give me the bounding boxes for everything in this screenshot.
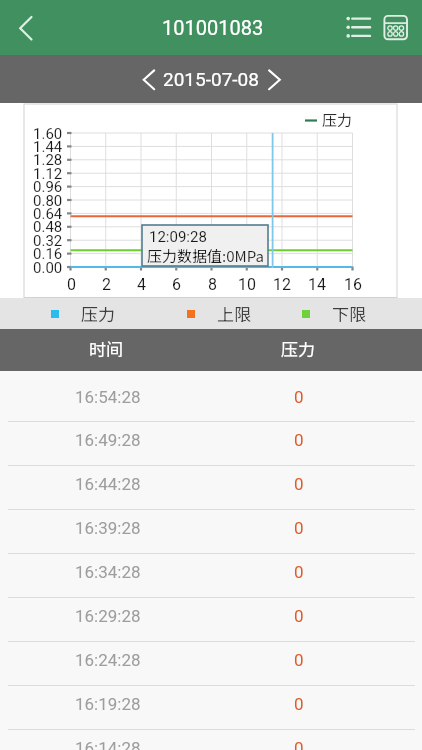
staticText: 16:44:28 [75, 474, 141, 494]
button[interactable]: Calculator [378, 8, 414, 48]
staticText: 101001083 [162, 16, 264, 39]
staticText: 0 [294, 387, 304, 407]
staticText: 压力数据值:0MPa [147, 245, 264, 267]
staticText: 压力 [322, 109, 353, 131]
staticText: 0 [294, 430, 304, 450]
staticText: 0 [294, 694, 304, 714]
staticText: 下限 [332, 301, 366, 326]
staticText: 上限 [217, 301, 251, 326]
staticText: 16:19:28 [75, 694, 141, 714]
button[interactable]: Previous day [132, 59, 166, 99]
staticText: 时间 [89, 336, 123, 361]
button[interactable]: 16:24:28 [0, 638, 422, 682]
staticText: 1.60 [33, 125, 63, 143]
button[interactable]: Back [0, 4, 52, 52]
staticText: 0.48 [33, 218, 63, 236]
staticText: 10 [238, 275, 256, 294]
staticText: 2015-07-08 [163, 68, 259, 90]
staticText: 0 [294, 650, 304, 670]
staticText: 0 [67, 275, 76, 294]
staticText: 0.64 [33, 205, 63, 223]
staticText: 0 [294, 738, 304, 750]
staticText: 0 [294, 474, 304, 494]
staticText: 16:14:28 [75, 738, 141, 750]
button[interactable]: 16:44:28 [0, 462, 422, 506]
staticText: 0.16 [33, 245, 63, 263]
button[interactable]: Next day [258, 59, 292, 99]
staticText: 压力 [281, 336, 315, 361]
staticText: 压力 [81, 301, 115, 326]
staticText: 4 [137, 275, 146, 294]
staticText: 0.32 [33, 232, 63, 250]
staticText: 16:24:28 [75, 650, 141, 670]
button[interactable]: 16:49:28 [0, 418, 422, 462]
staticText: 12:09:28 [149, 228, 207, 246]
button[interactable]: 16:14:28 [0, 726, 422, 750]
staticText: 6 [172, 275, 181, 294]
staticText: 12 [273, 275, 291, 294]
button[interactable]: 16:19:28 [0, 682, 422, 726]
button[interactable]: 16:29:28 [0, 594, 422, 638]
staticText: 0 [294, 562, 304, 582]
button[interactable]: 16:54:28 [0, 375, 422, 419]
button[interactable]: 16:39:28 [0, 506, 422, 550]
staticText: 1.28 [33, 151, 63, 169]
button[interactable]: 压力 [51, 298, 115, 329]
button[interactable]: 下限 [302, 298, 366, 329]
staticText: 16:39:28 [75, 518, 141, 538]
staticText: 1.12 [33, 165, 63, 183]
staticText: 8 [208, 275, 217, 294]
staticText: 2 [102, 275, 111, 294]
button[interactable]: 上限 [187, 298, 251, 329]
staticText: 0.00 [33, 259, 63, 277]
staticText: 0 [294, 518, 304, 538]
staticText: 16:54:28 [75, 387, 141, 407]
staticText: 16:29:28 [75, 606, 141, 626]
staticText: 16 [344, 275, 362, 294]
staticText: 0.96 [33, 178, 63, 196]
button[interactable]: 16:34:28 [0, 550, 422, 594]
staticText: 0 [294, 606, 304, 626]
staticText: 16:49:28 [75, 430, 141, 450]
staticText: 0.80 [33, 192, 63, 210]
staticText: 16:34:28 [75, 562, 141, 582]
button[interactable]: List view [336, 6, 378, 50]
staticText: 1.44 [33, 138, 63, 156]
staticText: 14 [308, 275, 326, 294]
